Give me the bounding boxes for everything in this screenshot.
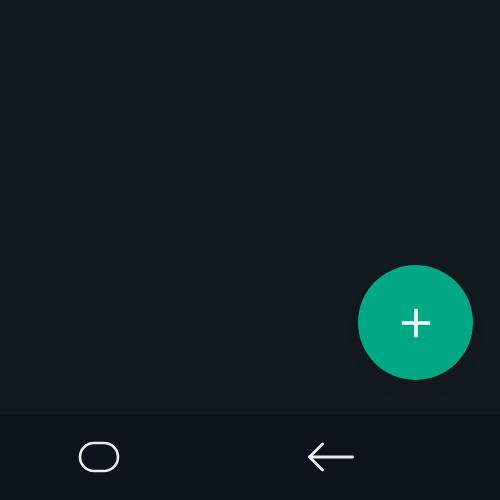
button[interactable]: Home xyxy=(69,428,129,486)
button[interactable]: Back xyxy=(301,428,361,486)
button[interactable]: New chat xyxy=(358,265,473,380)
